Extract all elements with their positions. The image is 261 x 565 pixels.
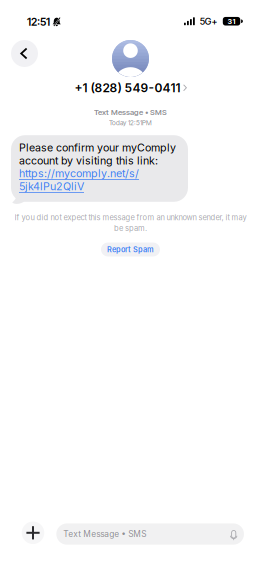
button[interactable]: Text Message • SMS [56,523,244,545]
staticText: Text Message • SMS [63,529,146,539]
staticText: +1 (828) 549-0411 [75,80,181,95]
staticText: Please confirm your myComply [19,141,176,154]
staticText: Text Message • SMS [94,107,167,117]
staticText: account by visiting this link: [19,154,158,167]
staticText: Today 12:51PM [109,119,152,127]
button[interactable]: Report Spam [101,242,160,256]
staticText: 12:51 [27,15,50,28]
button[interactable]: Back [11,40,38,67]
staticText: 5G+ [200,16,218,27]
staticText: Report Spam [107,245,154,254]
staticText: 31 [228,17,236,26]
staticText: If you did not expect this message from … [14,213,246,222]
button[interactable]: +1 (828) 549-0411 [0,40,261,95]
staticText: be spam. [114,224,147,233]
button[interactable]: Add attachment [22,521,44,544]
staticText: 5jk4lPu2QliV [19,180,84,193]
staticText: https://mycomply.net/s/ [19,167,139,180]
